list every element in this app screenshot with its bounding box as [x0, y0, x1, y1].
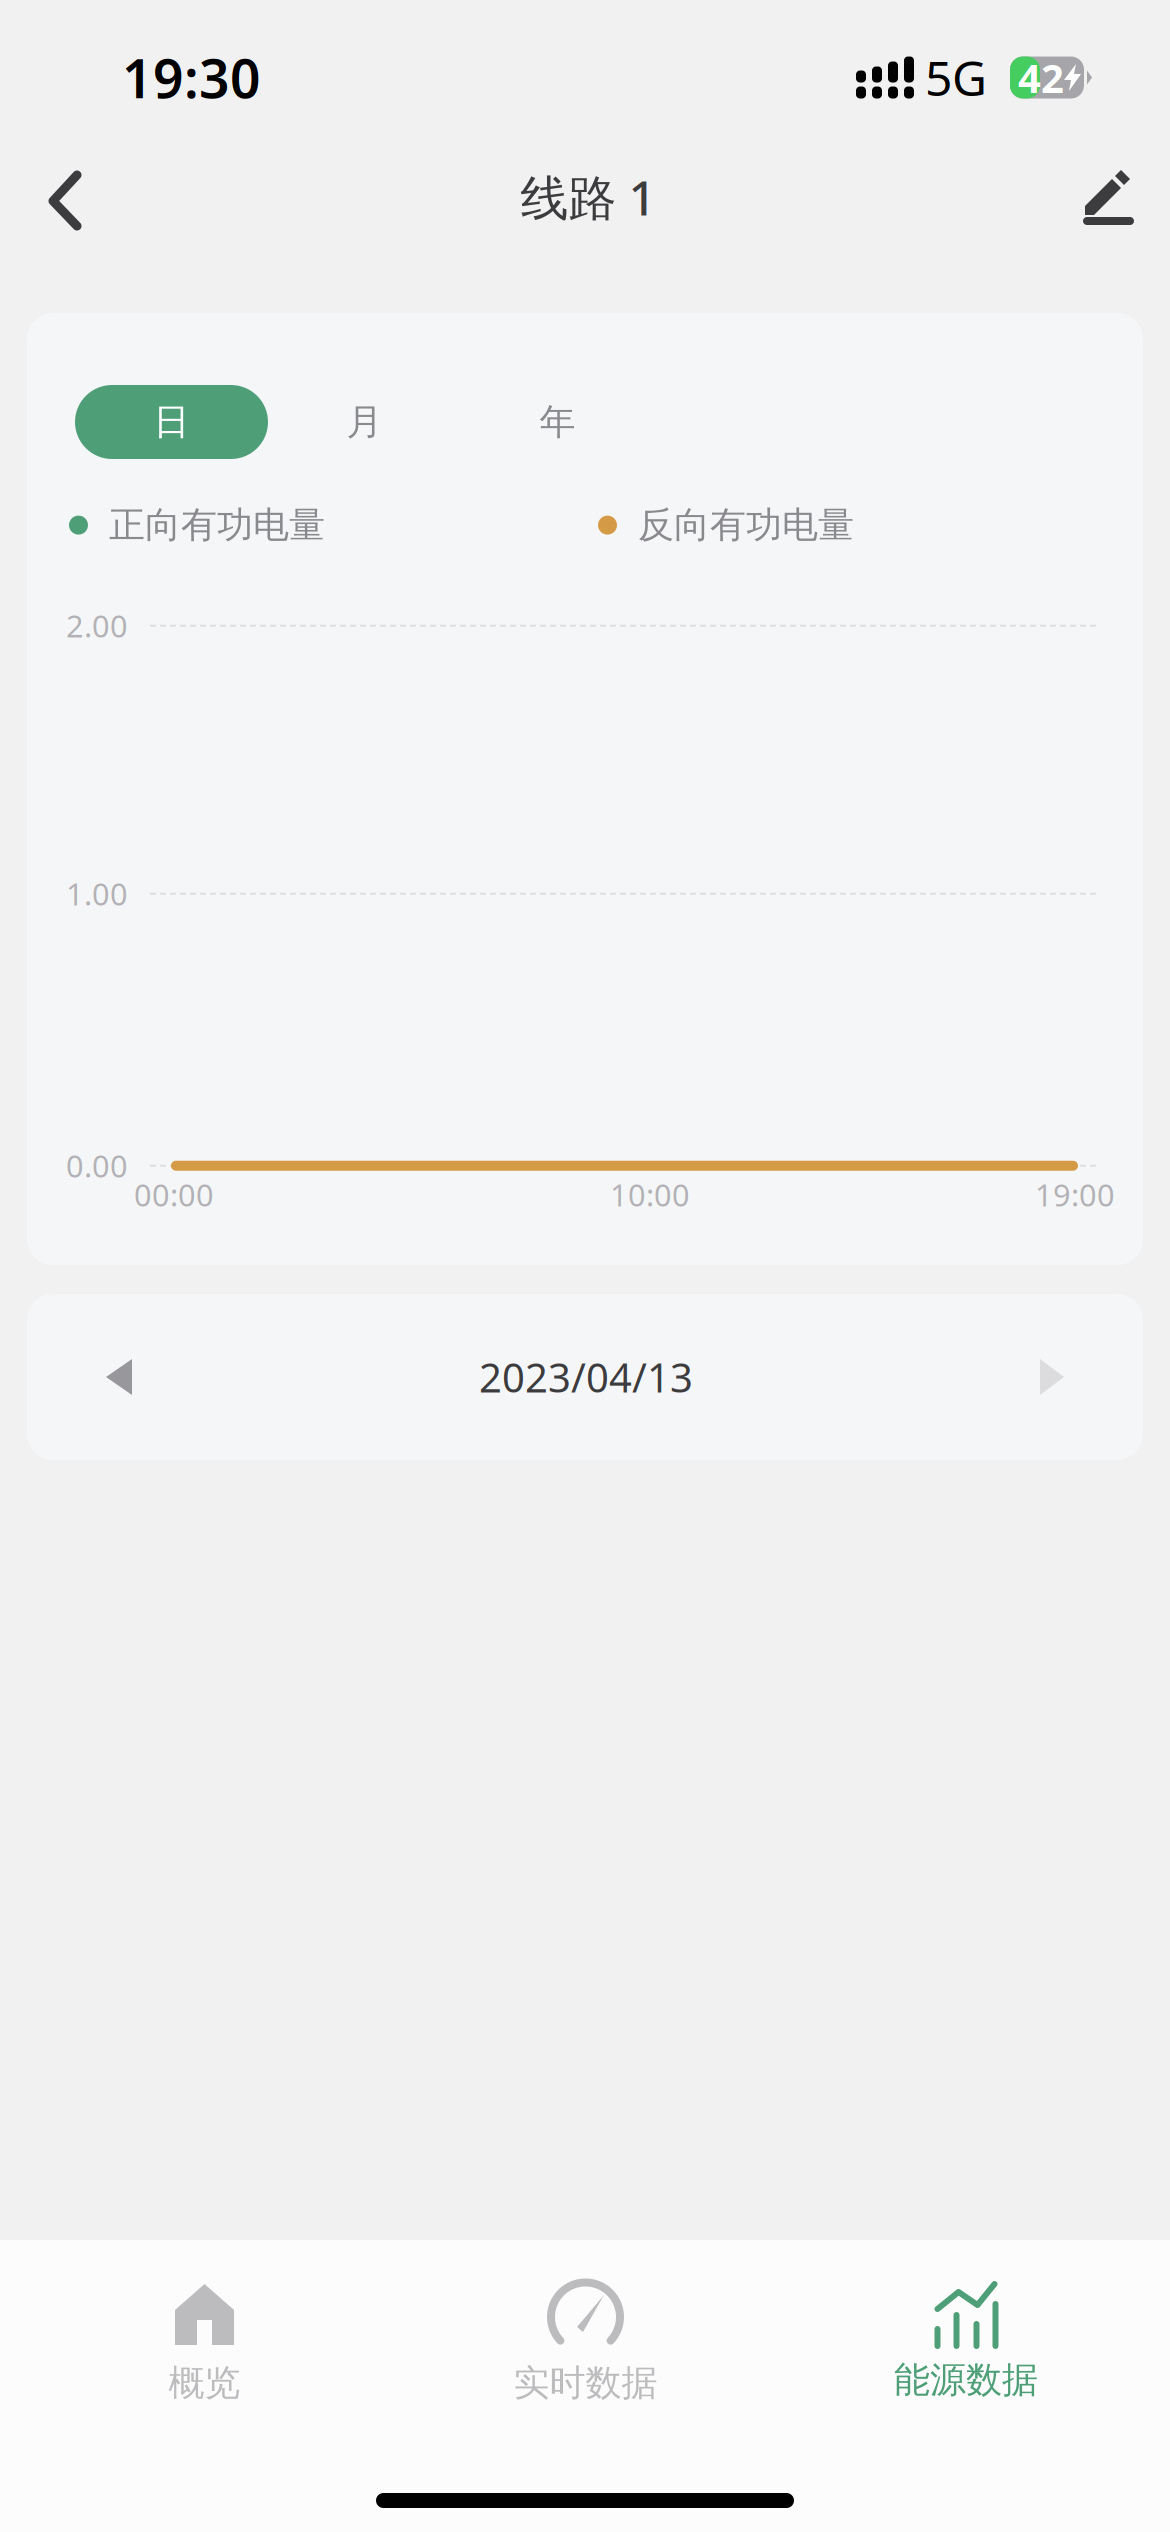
staticText: 10:00: [610, 1174, 690, 1215]
staticText: 5G: [925, 46, 987, 109]
staticText: 反向有功电量: [638, 503, 854, 547]
staticText: 能源数据: [894, 2358, 1038, 2402]
staticText: 日: [153, 400, 189, 444]
button[interactable]: 月: [268, 385, 461, 459]
button[interactable]: Back: [13, 166, 113, 276]
button[interactable]: 概览: [104, 2240, 304, 2420]
staticText: 月: [346, 400, 382, 444]
button[interactable]: 年: [461, 385, 654, 459]
button[interactable]: 能源数据: [866, 2240, 1066, 2420]
staticText: 线路 1: [520, 165, 655, 229]
staticText: 年: [539, 400, 575, 444]
staticText: 1.00: [66, 873, 128, 914]
staticText: 2023/04/13: [479, 1350, 693, 1403]
button[interactable]: Edit: [1060, 168, 1160, 278]
staticText: 正向有功电量: [109, 503, 325, 547]
button[interactable]: 实时数据: [485, 2240, 685, 2420]
staticText: 00:00: [134, 1174, 214, 1215]
staticText: 2.00: [66, 605, 128, 646]
button[interactable]: Previous day: [88, 1337, 178, 1417]
staticText: 0.00: [66, 1145, 128, 1186]
button[interactable]: Next day: [994, 1337, 1084, 1417]
staticText: 19:00: [1035, 1174, 1115, 1215]
button[interactable]: 日: [75, 385, 268, 459]
staticText: 概览: [168, 2361, 240, 2405]
staticText: 实时数据: [513, 2361, 657, 2405]
staticText: 19:30: [122, 42, 261, 113]
staticText: 42: [1018, 51, 1064, 104]
